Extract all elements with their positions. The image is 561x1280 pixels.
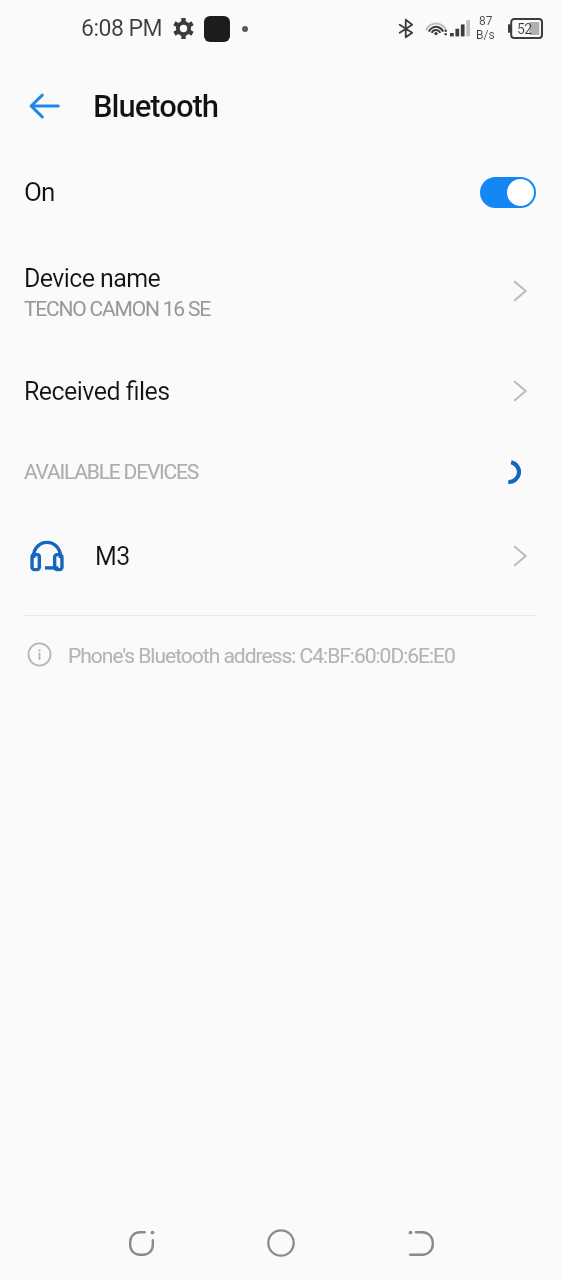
staticText: B/s [476,28,495,42]
button[interactable]: Home [246,1208,316,1278]
button[interactable]: Back [386,1208,456,1278]
staticText: Device name [24,264,161,293]
staticText: Phone's Bluetooth address: C4:BF:60:0D:6… [68,644,455,669]
button[interactable]: Device name [0,248,561,338]
staticText: Bluetooth [93,88,219,124]
staticText: TECNO CAMON 16 SE [24,297,210,322]
staticText: AVAILABLE DEVICES [24,460,199,485]
staticText: 52 [517,21,532,37]
button[interactable]: Received files [0,356,561,426]
staticText: 6:08 PM [81,15,163,42]
button[interactable]: Bluetooth toggle [480,177,536,208]
button[interactable]: On [0,161,561,223]
button[interactable]: Recent apps [106,1208,176,1278]
button[interactable]: Back [18,80,70,132]
staticText: On [24,177,55,207]
staticText: M3 [95,542,130,571]
staticText: 87 [479,14,493,28]
button[interactable]: M3 [0,518,561,594]
staticText: Received files [24,377,170,406]
